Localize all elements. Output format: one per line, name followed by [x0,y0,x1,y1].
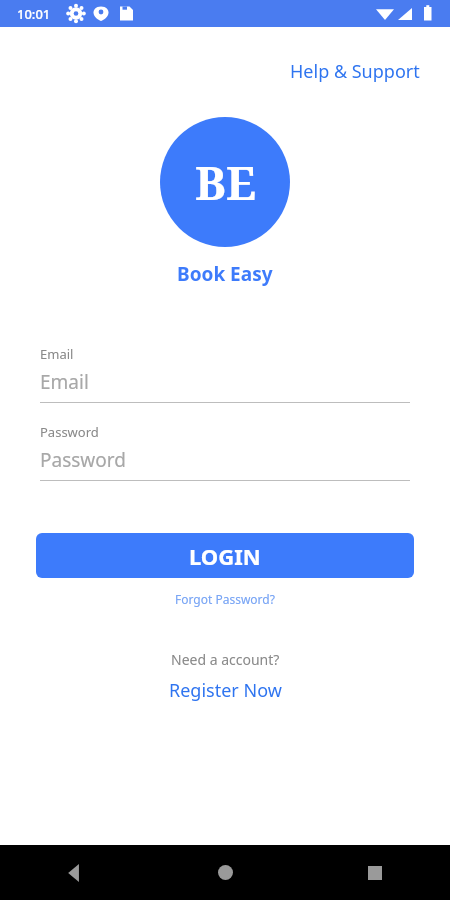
button[interactable]: Back [0,845,150,900]
button[interactable]: Register Now [163,676,288,705]
button[interactable]: Email [40,345,410,403]
staticText: Register Now [169,678,282,703]
staticText: Book Easy [177,261,273,287]
staticText: Password [40,423,99,441]
button[interactable]: Forgot Password? [167,588,283,610]
staticText: 10:01 [17,5,51,23]
staticText: Forgot Password? [175,591,275,607]
staticText: BE [195,151,256,214]
button[interactable]: Password [40,423,410,481]
button[interactable]: Help & Support [286,55,424,88]
staticText: Email [40,345,74,363]
staticText: Password [40,447,126,473]
button[interactable]: LOGIN [36,533,414,578]
staticText: Need a account? [171,650,280,669]
button[interactable]: Recent apps [300,845,450,900]
staticText: LOGIN [189,541,261,571]
staticText: Help & Support [290,59,420,84]
staticText: Email [40,369,89,395]
button[interactable]: Home [150,845,300,900]
